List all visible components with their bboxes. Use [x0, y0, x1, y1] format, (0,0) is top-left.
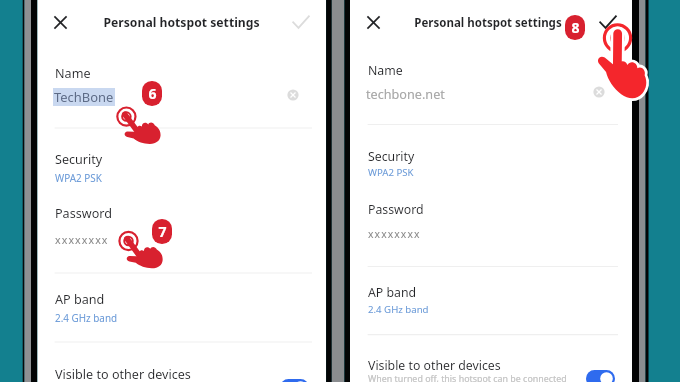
- staticText: Visible to other devices: [368, 357, 501, 374]
- staticText: Personal hotspot settings: [347, 15, 629, 31]
- button[interactable]: Clear text: [285, 87, 301, 103]
- staticText: Name: [368, 62, 403, 79]
- button[interactable]: Confirm: [596, 10, 620, 34]
- staticText: techbone.net: [366, 85, 445, 102]
- staticText: xxxxxxxx: [55, 233, 109, 247]
- button[interactable]: Confirm: [289, 10, 313, 34]
- button[interactable]: Close: [362, 11, 385, 34]
- staticText: Security: [55, 151, 103, 168]
- staticText: Security: [368, 148, 415, 165]
- staticText: 6: [148, 84, 157, 103]
- staticText: WPA2 PSK: [368, 166, 414, 179]
- button[interactable]: Clear text: [591, 84, 607, 100]
- staticText: Password: [55, 205, 112, 222]
- button[interactable]: Visible to other devices toggle: [586, 370, 615, 382]
- button[interactable]: Close: [49, 11, 72, 34]
- staticText: WPA2 PSK: [55, 171, 102, 184]
- staticText: 2.4 GHz band: [55, 311, 118, 324]
- staticText: AP band: [368, 284, 417, 301]
- staticText: xxxxxxxx: [368, 227, 421, 241]
- button[interactable]: Visible to other devices toggle: [280, 379, 309, 382]
- staticText: TechBone: [54, 88, 114, 106]
- staticText: Personal hotspot settings: [37, 14, 326, 31]
- staticText: Visible to other devices: [55, 366, 191, 382]
- staticText: AP band: [55, 291, 105, 308]
- staticText: 2.4 GHz band: [368, 303, 429, 316]
- staticText: 8: [571, 18, 580, 37]
- staticText: When turned off, this hotspot can be con…: [368, 373, 567, 382]
- staticText: 7: [158, 222, 167, 241]
- staticText: Name: [55, 65, 91, 82]
- staticText: Password: [368, 201, 424, 218]
